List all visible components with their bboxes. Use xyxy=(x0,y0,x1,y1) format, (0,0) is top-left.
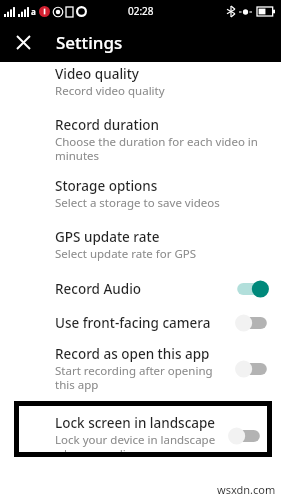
staticText: Record duration xyxy=(55,116,160,134)
button[interactable]: Disabled xyxy=(233,358,271,380)
button[interactable]: Enabled xyxy=(233,278,271,300)
button[interactable]: Record as open this app xyxy=(0,345,281,392)
staticText: Lock your device in landscape when recor… xyxy=(55,432,223,452)
staticText: wsxdn.com xyxy=(217,482,276,497)
staticText: 02:28 xyxy=(128,4,154,18)
staticText: Select a storage to save videos xyxy=(55,195,220,211)
button[interactable]: Lock screen in landscape xyxy=(19,406,267,452)
button[interactable]: Record duration xyxy=(0,116,281,163)
button[interactable]: Disabled xyxy=(233,312,271,334)
staticText: Record Audio xyxy=(55,280,142,298)
button[interactable]: Close xyxy=(9,28,37,56)
button[interactable]: Record Audio xyxy=(0,278,281,300)
staticText: Record video quality xyxy=(55,83,165,99)
staticText: Choose the duration for each video in mi… xyxy=(55,134,267,163)
staticText: Lock screen in landscape xyxy=(55,414,216,432)
staticText: Select update rate for GPS xyxy=(55,246,197,262)
staticText: Storage options xyxy=(55,177,158,195)
staticText: Video quality xyxy=(55,65,139,83)
button[interactable]: Storage options xyxy=(0,177,281,211)
staticText: Use front-facing camera xyxy=(55,314,211,332)
staticText: Record as open this app xyxy=(55,345,210,363)
button[interactable]: GPS update rate xyxy=(0,228,281,262)
staticText: Settings xyxy=(56,31,123,54)
staticText: a xyxy=(31,6,36,17)
staticText: GPS update rate xyxy=(55,228,160,246)
button[interactable]: Use front-facing camera xyxy=(0,312,281,334)
button[interactable]: Disabled xyxy=(226,425,264,447)
staticText: Start recording after opening this app xyxy=(55,363,229,392)
button[interactable]: Video quality xyxy=(0,65,281,99)
